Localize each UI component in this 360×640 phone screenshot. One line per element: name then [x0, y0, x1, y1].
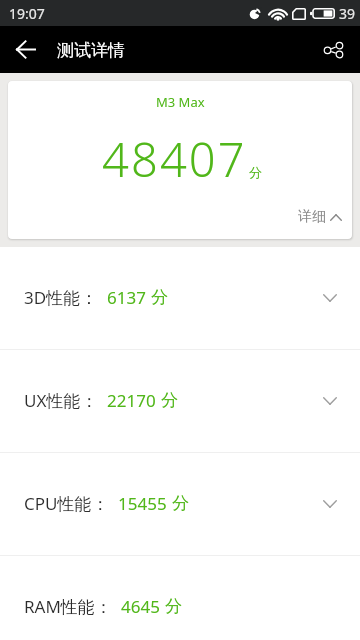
- staticText: M3 Max: [156, 93, 205, 111]
- staticText: UX性能：: [24, 389, 98, 412]
- button[interactable]: RAM性能：: [0, 556, 360, 640]
- staticText: CPU性能：: [24, 492, 109, 515]
- staticText: 3D性能：: [24, 286, 98, 309]
- staticText: 48407: [102, 127, 247, 191]
- staticText: 4645: [121, 595, 160, 618]
- staticText: 分: [172, 493, 189, 514]
- button[interactable]: UX性能：: [0, 350, 360, 453]
- staticText: 39: [339, 4, 356, 23]
- button[interactable]: CPU性能：: [0, 453, 360, 556]
- staticText: 分: [249, 164, 262, 180]
- staticText: 22170: [107, 389, 156, 412]
- staticText: 15455: [118, 492, 167, 515]
- staticText: RAM性能：: [24, 595, 112, 618]
- button[interactable]: 3D性能：: [0, 247, 360, 350]
- staticText: 分: [161, 390, 178, 411]
- staticText: 详细: [298, 208, 326, 226]
- button[interactable]: Back: [2, 26, 49, 73]
- button[interactable]: M3 Max: [8, 81, 352, 239]
- staticText: 分: [151, 287, 168, 308]
- staticText: 19:07: [9, 4, 45, 23]
- staticText: 测试详情: [57, 40, 125, 61]
- button[interactable]: 详细: [298, 208, 342, 226]
- button[interactable]: Share: [312, 29, 354, 71]
- staticText: 分: [165, 596, 182, 617]
- staticText: 6137: [107, 286, 146, 309]
